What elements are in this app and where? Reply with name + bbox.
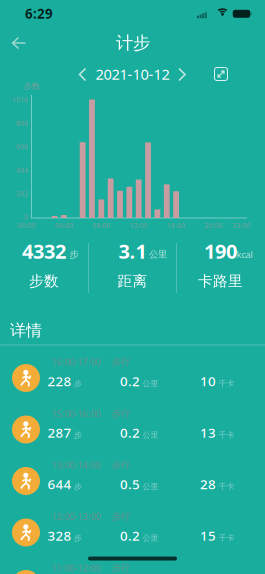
staticText: 15:00-16:00: [51, 407, 100, 420]
staticText: 202: [16, 189, 28, 198]
staticText: 公里: [142, 379, 158, 388]
staticText: 公里: [142, 482, 158, 491]
staticText: 190: [204, 238, 237, 264]
staticText: 13:00-14:00: [51, 459, 100, 471]
staticText: 步行: [112, 408, 130, 419]
button[interactable]: 前一天: [76, 67, 90, 82]
staticText: 0.2: [120, 372, 140, 390]
staticText: 606: [16, 142, 28, 151]
staticText: 23:00: [232, 221, 250, 230]
staticText: 步行: [112, 356, 130, 368]
staticText: 04:00: [55, 221, 73, 230]
staticText: 步数: [29, 272, 59, 290]
staticText: 228: [47, 372, 71, 390]
staticText: 28: [200, 475, 216, 493]
staticText: 卡路里: [198, 272, 243, 290]
staticText: 16:00: [167, 221, 185, 230]
staticText: 0.2: [120, 527, 140, 544]
staticText: 2021-10-12: [95, 64, 169, 84]
staticText: 步行: [112, 511, 130, 522]
staticText: 12:00: [130, 221, 148, 230]
button[interactable]: 后一天: [174, 67, 188, 82]
staticText: 15: [200, 527, 216, 544]
staticText: 步: [69, 249, 78, 260]
staticText: 步行: [112, 459, 130, 471]
staticText: 13: [200, 424, 216, 441]
staticText: 08:00: [92, 221, 110, 230]
staticText: 步: [74, 430, 82, 440]
staticText: 12:00-13:00: [51, 510, 100, 523]
staticText: 404: [16, 166, 28, 175]
staticText: 千卡: [218, 482, 234, 491]
staticText: 0.5: [120, 475, 140, 493]
staticText: 步数: [24, 81, 40, 91]
staticText: 00:00: [17, 221, 35, 230]
button[interactable]: 返回: [4, 32, 34, 54]
staticText: 4332: [22, 238, 66, 264]
staticText: 20:00: [204, 221, 222, 230]
staticText: 公里: [142, 533, 158, 543]
staticText: 公里: [142, 430, 158, 440]
staticText: 距离: [117, 272, 147, 290]
staticText: 公里: [149, 249, 167, 260]
staticText: 步行: [112, 562, 130, 574]
staticText: 千卡: [218, 533, 234, 543]
staticText: 287: [47, 424, 71, 441]
staticText: 808: [16, 119, 28, 128]
staticText: 3.1: [118, 238, 146, 264]
staticText: 步: [74, 379, 82, 388]
staticText: 16:00-17:00: [51, 356, 100, 368]
button[interactable]: 全屏查看: [214, 67, 228, 81]
staticText: 1010: [12, 95, 28, 104]
staticText: 千卡: [218, 379, 234, 388]
staticText: 千卡: [218, 430, 234, 440]
staticText: kcal: [236, 248, 252, 261]
button[interactable]: 2021-10-12: [95, 64, 169, 84]
staticText: 计步: [116, 32, 150, 54]
staticText: 详情: [10, 321, 42, 340]
staticText: 10: [200, 372, 216, 390]
staticText: 328: [47, 527, 71, 544]
staticText: 步: [74, 482, 82, 491]
staticText: 11:00-12:00: [51, 562, 100, 574]
staticText: 0: [24, 213, 28, 221]
staticText: 步: [74, 533, 82, 543]
staticText: 0.2: [120, 424, 140, 441]
staticText: 6:29: [25, 5, 53, 22]
staticText: 644: [47, 475, 71, 493]
